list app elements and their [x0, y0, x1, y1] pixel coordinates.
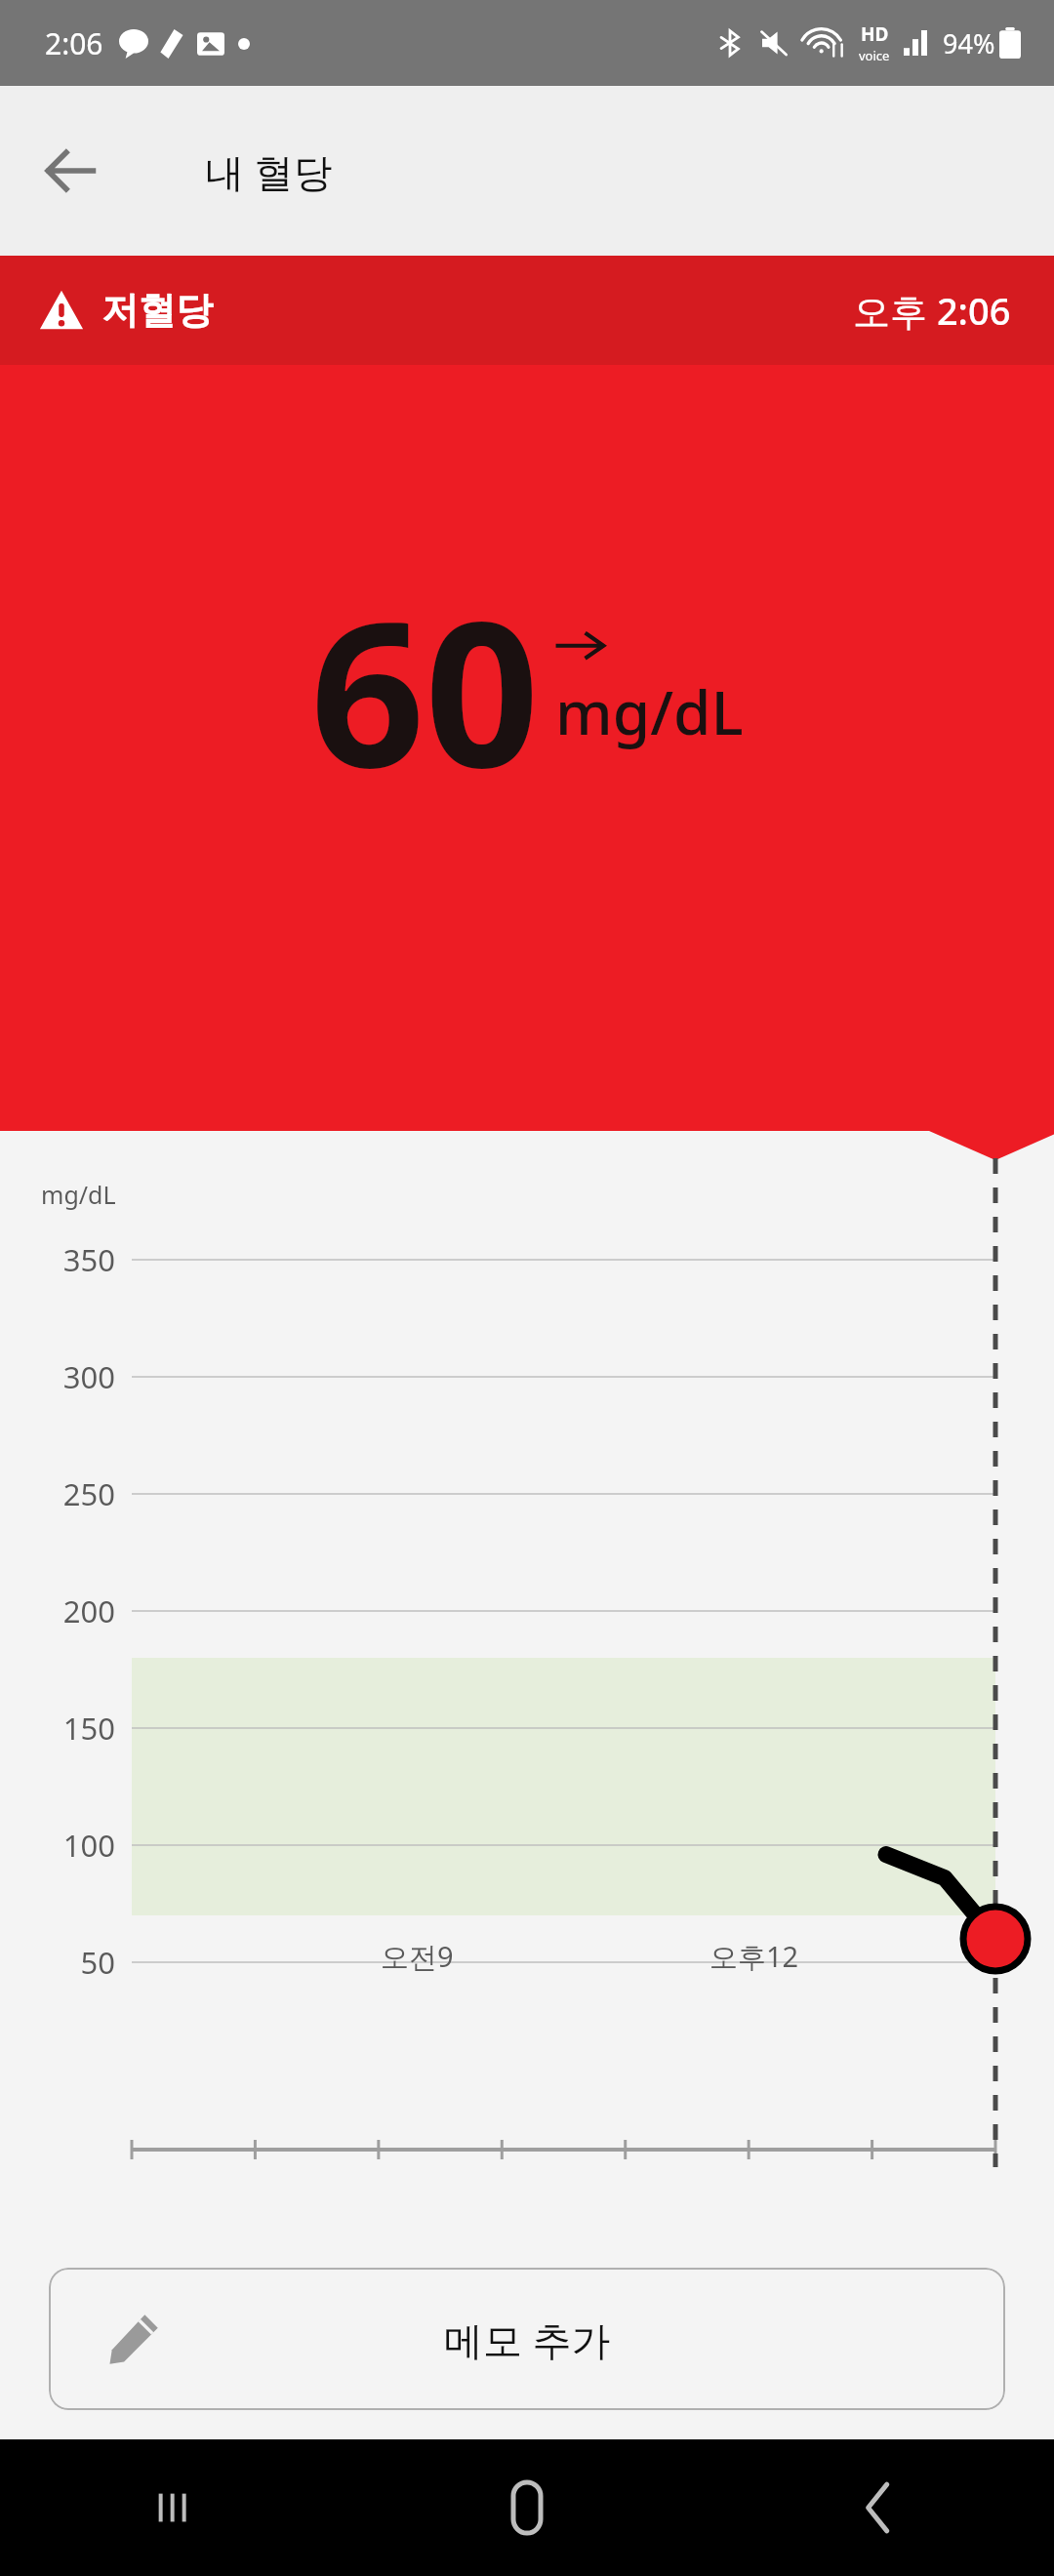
staticText: 저혈당 [101, 287, 213, 334]
button[interactable]: Back [23, 124, 117, 218]
staticText: 94% [943, 25, 995, 61]
staticText: mg/dL [555, 670, 744, 752]
staticText: 350 [0, 1239, 115, 1280]
staticText: 200 [0, 1590, 115, 1631]
staticText: 메모 추가 [444, 2313, 611, 2366]
button[interactable]: 메모 추가 [49, 2268, 1005, 2410]
staticText: 오전9 [381, 1937, 454, 1976]
button[interactable]: Recents [0, 2439, 351, 2576]
staticText: 내 혈당 [205, 144, 333, 198]
staticText: 오후 2:06 [853, 285, 1011, 336]
staticText: 300 [0, 1356, 115, 1397]
button[interactable]: Back [703, 2439, 1054, 2576]
staticText: mg/dL [41, 1178, 116, 1211]
staticText: 250 [0, 1473, 115, 1514]
staticText: 50 [0, 1942, 115, 1983]
staticText: 2:06 [45, 23, 103, 63]
staticText: voice [859, 47, 890, 64]
staticText: HD [861, 21, 889, 47]
staticText: 100 [0, 1825, 115, 1866]
staticText: 150 [0, 1708, 115, 1749]
staticText: 60 [310, 553, 540, 825]
button[interactable]: Home [351, 2439, 703, 2576]
staticText: 오후12 [709, 1937, 799, 1976]
